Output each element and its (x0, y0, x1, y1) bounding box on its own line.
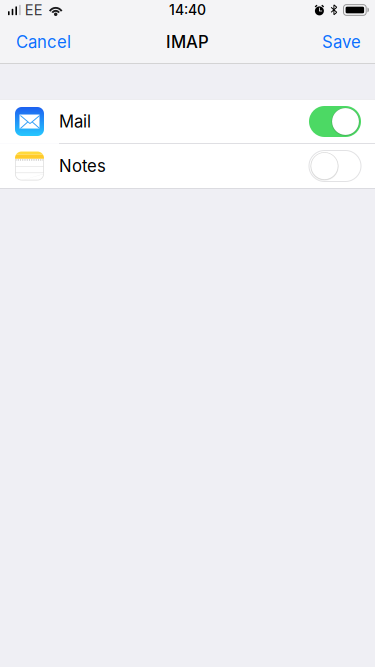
button[interactable]: Notes (0, 144, 375, 188)
staticText: 14:40 (169, 1, 206, 18)
staticText: IMAP (166, 32, 209, 52)
staticText: Save (322, 32, 361, 52)
staticText: EE (25, 1, 43, 19)
staticText: Mail (59, 111, 91, 132)
button[interactable]: Mail (0, 99, 375, 143)
button[interactable]: Cancel (0, 20, 87, 64)
staticText: Notes (59, 156, 106, 176)
staticText: Cancel (16, 32, 71, 52)
button[interactable]: Save (306, 20, 375, 64)
